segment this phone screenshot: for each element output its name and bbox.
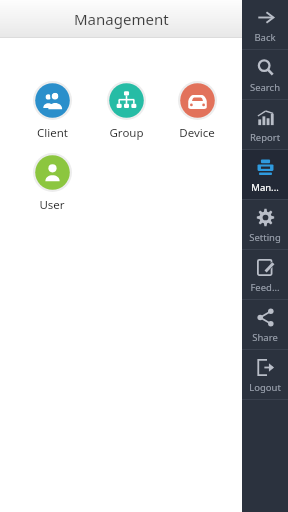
button[interactable]: Logout — [242, 350, 288, 399]
button[interactable]: Report — [242, 100, 288, 149]
button[interactable]: Man... — [242, 150, 288, 199]
button[interactable]: Share — [242, 300, 288, 349]
staticText: Client — [37, 125, 68, 141]
staticText: Management — [74, 9, 169, 29]
staticText: Device — [179, 125, 215, 141]
staticText: Setting — [242, 231, 288, 244]
button[interactable]: Feed... — [242, 250, 288, 299]
staticText: Logout — [242, 381, 288, 394]
staticText: Man... — [242, 181, 288, 194]
staticText: Search — [242, 81, 288, 94]
button[interactable]: Group — [92, 79, 160, 143]
button[interactable]: Setting — [242, 200, 288, 249]
staticText: Report — [242, 131, 288, 144]
staticText: Group — [109, 125, 144, 141]
staticText: User — [39, 197, 65, 213]
staticText: Feed... — [242, 281, 288, 294]
staticText: Share — [242, 331, 288, 344]
button[interactable]: User — [12, 151, 92, 215]
staticText: Back — [242, 31, 288, 44]
button[interactable]: Client — [12, 79, 92, 143]
button[interactable]: Device — [160, 79, 234, 143]
button[interactable]: Search — [242, 50, 288, 99]
button[interactable]: Back — [242, 0, 288, 49]
